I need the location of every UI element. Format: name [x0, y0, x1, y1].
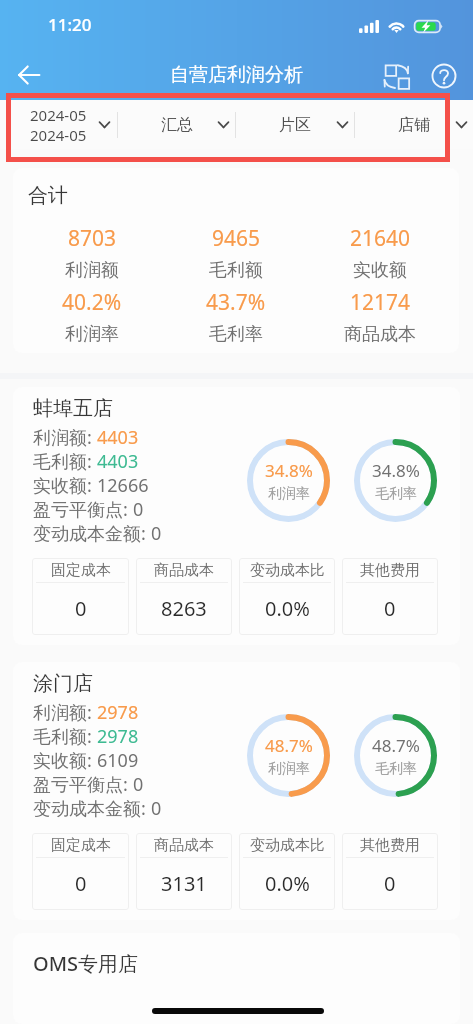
staticText: 11:20 — [48, 13, 92, 36]
staticText: 48.7% — [372, 734, 420, 757]
staticText: 利润额: — [33, 700, 97, 724]
button[interactable]: 商品成本 — [136, 833, 232, 910]
staticText: 0 — [75, 595, 87, 622]
staticText: 0 — [151, 521, 162, 545]
staticText: 变动成本比 — [250, 836, 325, 855]
staticText: 涂门店 — [33, 671, 93, 696]
button[interactable]: 其他费用 — [342, 558, 438, 635]
staticText: 毛利额: — [33, 724, 97, 748]
button[interactable]: 其他费用 — [342, 833, 438, 910]
staticText: 利润额 — [65, 259, 119, 282]
staticText: 变动成本金额: — [33, 796, 151, 820]
staticText: 8703 — [68, 224, 117, 253]
staticText: 固定成本 — [51, 561, 111, 580]
staticText: 毛利率 — [375, 485, 417, 503]
staticText: 利润额: — [33, 425, 97, 449]
staticText: 8263 — [161, 595, 207, 622]
button[interactable]: 9465 — [164, 224, 308, 282]
staticText: 48.7% — [265, 734, 313, 757]
button[interactable]: 店铺 — [355, 100, 473, 149]
staticText: 汇总 — [161, 115, 193, 135]
staticText: 盈亏平衡点: — [33, 772, 133, 796]
staticText: 12174 — [350, 288, 411, 317]
staticText: 0 — [133, 772, 144, 796]
button[interactable]: 2024-05 — [0, 100, 117, 149]
button[interactable]: 固定成本 — [32, 833, 129, 910]
staticText: 0.0% — [265, 595, 310, 622]
staticText: 商品成本 — [344, 323, 416, 346]
button[interactable]: 43.7% — [164, 288, 308, 346]
staticText: 0 — [133, 497, 144, 521]
staticText: 实收额: — [33, 473, 97, 497]
staticText: 商品成本 — [154, 561, 214, 580]
staticText: 毛利率 — [209, 323, 263, 346]
staticText: 21640 — [350, 224, 411, 253]
staticText: 自营店利润分析 — [170, 63, 303, 87]
staticText: 0.0% — [265, 870, 310, 897]
staticText: OMS专用店 — [33, 950, 139, 977]
staticText: 2024-05 — [30, 105, 87, 125]
button[interactable]: 商品成本 — [136, 558, 232, 635]
button[interactable]: 涂门店 — [13, 662, 460, 920]
button[interactable]: 变动成本比 — [239, 558, 335, 635]
staticText: 0 — [384, 595, 396, 622]
staticText: 0 — [75, 870, 87, 897]
staticText: 变动成本金额: — [33, 521, 151, 545]
staticText: 12666 — [97, 473, 149, 497]
button[interactable]: 21640 — [308, 224, 452, 282]
button[interactable]: 汇总 — [118, 100, 235, 149]
button[interactable]: 变动成本比 — [239, 833, 335, 910]
button[interactable]: 12174 — [308, 288, 452, 346]
staticText: 毛利额: — [33, 449, 97, 473]
staticText: 毛利率 — [375, 760, 417, 778]
staticText: 34.8% — [265, 459, 313, 482]
staticText: 9465 — [212, 224, 261, 253]
staticText: 利润率 — [65, 323, 119, 346]
staticText: 实收额: — [33, 748, 97, 772]
staticText: 34.8% — [372, 459, 420, 482]
staticText: 利润率 — [268, 485, 310, 503]
staticText: 4403 — [97, 425, 139, 449]
staticText: 固定成本 — [51, 836, 111, 855]
button[interactable]: 片区 — [236, 100, 354, 149]
staticText: 店铺 — [398, 115, 430, 135]
staticText: 6109 — [97, 748, 139, 772]
staticText: 盈亏平衡点: — [33, 497, 133, 521]
button[interactable]: Back — [7, 51, 51, 95]
staticText: 商品成本 — [154, 836, 214, 855]
button[interactable]: 固定成本 — [32, 558, 129, 635]
button[interactable]: Switch view — [374, 46, 421, 100]
button[interactable]: 8703 — [20, 224, 164, 282]
staticText: 2024-05 — [30, 125, 87, 145]
button[interactable]: 蚌埠五店 — [13, 387, 460, 645]
staticText: 蚌埠五店 — [33, 396, 113, 421]
staticText: 其他费用 — [360, 836, 420, 855]
staticText: 4403 — [97, 449, 139, 473]
staticText: 2978 — [97, 724, 139, 748]
staticText: 片区 — [279, 115, 311, 135]
staticText: 毛利额 — [209, 259, 263, 282]
button[interactable]: Help — [421, 46, 465, 100]
staticText: 变动成本比 — [250, 561, 325, 580]
staticText: 合计 — [28, 183, 68, 208]
staticText: 2978 — [97, 700, 139, 724]
staticText: 0 — [384, 870, 396, 897]
staticText: 实收额 — [353, 259, 407, 282]
staticText: 0 — [151, 796, 162, 820]
staticText: 40.2% — [62, 288, 122, 317]
button[interactable]: 40.2% — [20, 288, 164, 346]
staticText: 其他费用 — [360, 561, 420, 580]
staticText: 43.7% — [206, 288, 266, 317]
staticText: 3131 — [161, 870, 207, 897]
staticText: 利润率 — [268, 760, 310, 778]
